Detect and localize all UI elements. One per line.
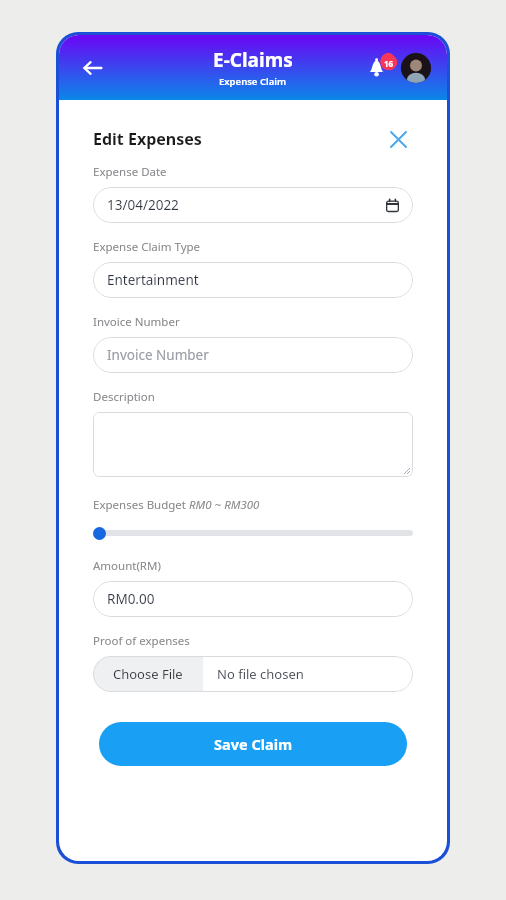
staticText: Expense Claim Type (93, 239, 201, 255)
staticText: Entertainment (107, 271, 199, 289)
staticText: Expense Date (93, 164, 167, 180)
button[interactable]: Notifications (365, 51, 399, 85)
button[interactable]: Expenses budget slider (93, 524, 413, 542)
button[interactable]: Profile (401, 53, 431, 83)
button[interactable] (93, 412, 413, 477)
button[interactable]: Save Claim (99, 722, 407, 766)
staticText: Save Claim (214, 734, 293, 754)
button[interactable]: Entertainment (93, 262, 413, 298)
staticText: Invoice Number (93, 314, 180, 330)
staticText: Description (93, 389, 155, 405)
staticText: Invoice Number (107, 346, 209, 364)
button[interactable]: Invoice Number (93, 337, 413, 373)
button[interactable]: Close (383, 124, 413, 154)
staticText: No file chosen (217, 665, 304, 683)
button[interactable]: 13/04/2022 (93, 187, 413, 223)
staticText: 13/04/2022 (107, 196, 179, 214)
staticText: Expenses Budget (93, 497, 189, 513)
button[interactable]: RM0.00 (93, 581, 413, 617)
staticText: RM0 ~ RM300 (189, 497, 260, 513)
staticText: 16 (384, 58, 394, 69)
staticText: Proof of expenses (93, 633, 190, 649)
staticText: Amount(RM) (93, 558, 161, 574)
staticText: Edit Expenses (93, 128, 202, 150)
button[interactable]: Back (73, 48, 113, 88)
button[interactable]: Choose File (93, 656, 413, 692)
staticText: Expense Claim (219, 75, 287, 88)
staticText: Choose File (113, 665, 183, 683)
staticText: RM0.00 (107, 590, 155, 608)
staticText: E-Claims (213, 47, 293, 73)
